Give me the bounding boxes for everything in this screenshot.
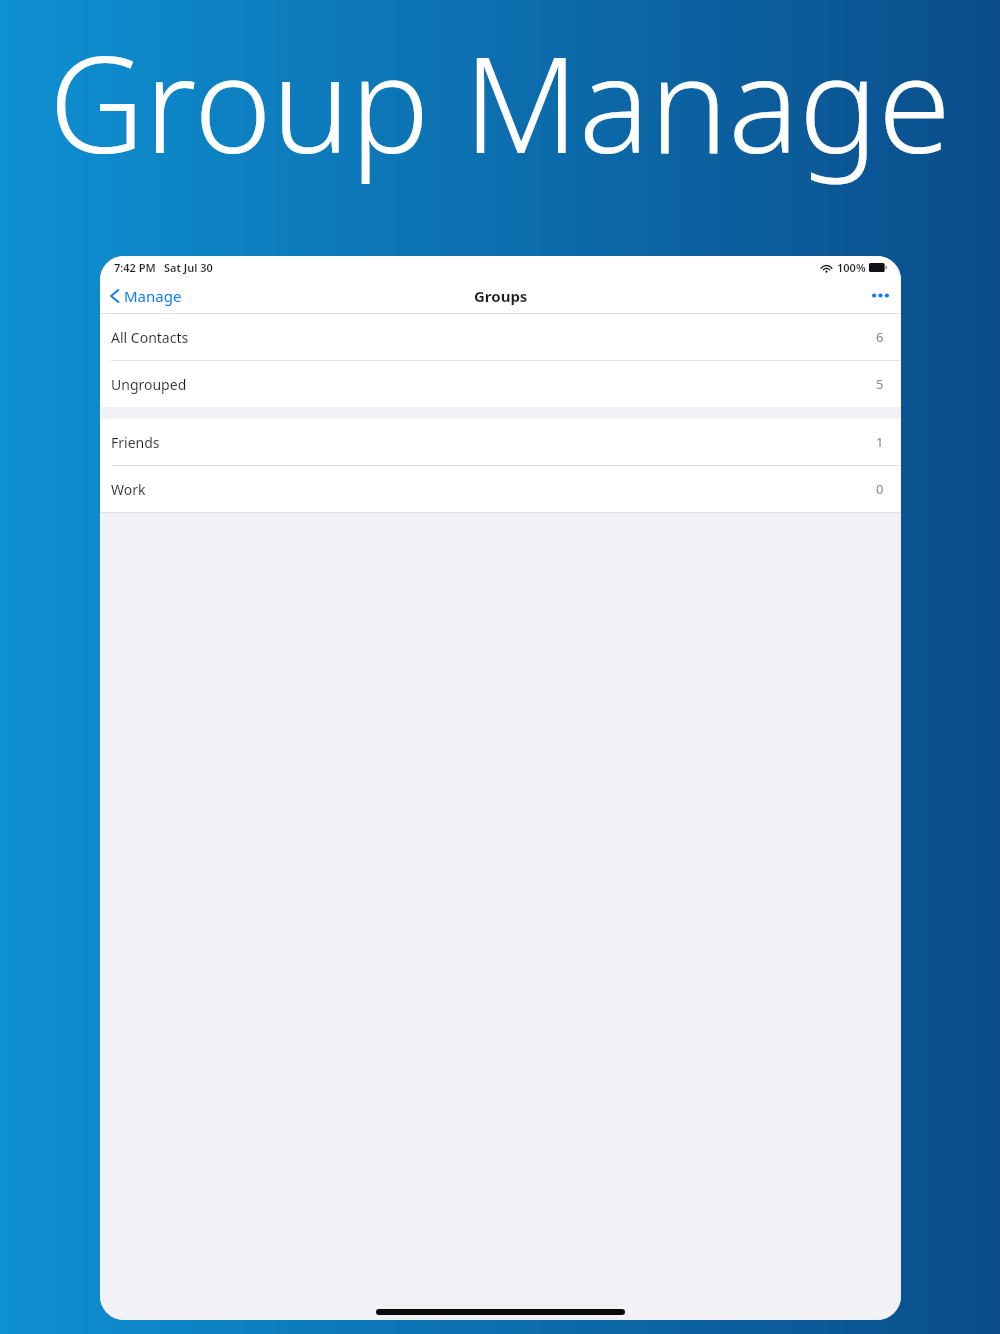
staticText: 6: [876, 328, 884, 346]
staticText: Group Manage: [49, 12, 951, 192]
button[interactable]: Ungrouped: [100, 361, 901, 407]
button[interactable]: All Contacts: [100, 314, 901, 360]
staticText: Sat Jul 30: [164, 260, 213, 275]
staticText: Friends: [111, 433, 160, 452]
staticText: 0: [876, 480, 884, 498]
staticText: Ungrouped: [111, 375, 187, 394]
staticText: 7:42 PM: [114, 260, 156, 275]
staticText: Work: [111, 480, 146, 499]
button[interactable]: Work: [100, 466, 901, 512]
staticText: 5: [876, 375, 884, 393]
staticText: Manage: [124, 286, 182, 306]
button[interactable]: Friends: [100, 419, 901, 465]
staticText: 1: [876, 433, 884, 451]
staticText: Groups: [474, 286, 528, 306]
button[interactable]: Manage: [100, 282, 192, 310]
staticText: 100%: [837, 260, 866, 275]
button[interactable]: More options: [860, 285, 901, 306]
staticText: All Contacts: [111, 328, 189, 347]
